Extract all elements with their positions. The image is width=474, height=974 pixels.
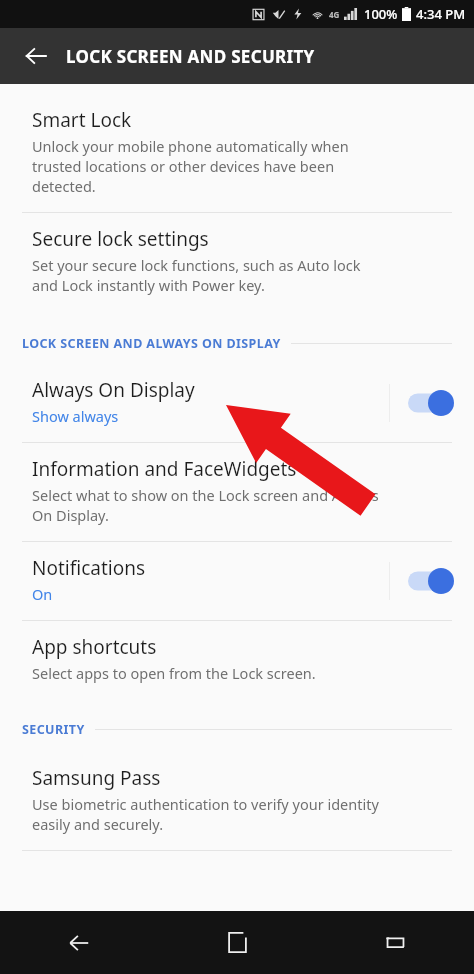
staticText: Set your secure lock functions, such as … <box>32 255 361 295</box>
staticText: Information and FaceWidgets <box>32 456 297 482</box>
button[interactable]: Toggle Always On Display <box>404 381 458 425</box>
staticText: Notifications <box>32 555 146 581</box>
button[interactable]: Secure lock settings <box>0 213 474 311</box>
staticText: Secure lock settings <box>32 226 209 252</box>
staticText: Show always <box>32 406 119 426</box>
button[interactable]: Toggle Notifications <box>404 559 458 603</box>
staticText: LOCK SCREEN AND SECURITY <box>66 45 315 68</box>
staticText: Select apps to open from the Lock screen… <box>32 663 316 683</box>
staticText: Unlock your mobile phone automatically w… <box>32 136 349 196</box>
staticText: Use biometric authentication to verify y… <box>32 794 379 834</box>
button[interactable]: Recents <box>316 911 474 974</box>
staticText: 4G <box>329 9 340 20</box>
staticText: On <box>32 584 53 604</box>
staticText: 4:34 PM <box>416 5 466 23</box>
staticText: Select what to show on the Lock screen a… <box>32 485 379 525</box>
staticText: SECURITY <box>22 721 85 738</box>
staticText: Samsung Pass <box>32 765 161 791</box>
staticText: Always On Display <box>32 377 195 403</box>
button[interactable]: Samsung Pass <box>0 752 474 850</box>
button[interactable]: Notifications <box>0 542 474 620</box>
button[interactable]: Information and FaceWidgets <box>0 443 474 541</box>
staticText: Smart Lock <box>32 107 132 133</box>
staticText: LOCK SCREEN AND ALWAYS ON DISPLAY <box>22 335 281 352</box>
staticText: App shortcuts <box>32 634 157 660</box>
button[interactable]: Back <box>14 34 58 78</box>
button[interactable]: Always On Display <box>0 364 474 442</box>
button[interactable]: Smart Lock <box>0 94 474 212</box>
button[interactable]: Home <box>158 911 316 974</box>
staticText: 100% <box>364 5 398 23</box>
button[interactable]: Back <box>0 911 158 974</box>
button[interactable]: App shortcuts <box>0 621 474 699</box>
